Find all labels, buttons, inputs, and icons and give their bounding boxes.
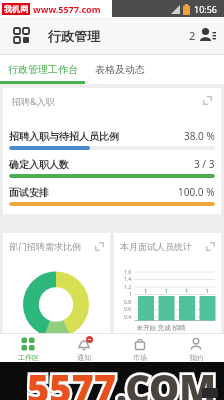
button[interactable]: 表格及动态: [85, 55, 155, 84]
button[interactable]: 行政管理工作台: [0, 55, 85, 84]
staticText: 工作区: [18, 353, 39, 362]
button[interactable]: 通知: [56, 334, 112, 362]
staticText: 5577.COM: [27, 362, 217, 400]
button[interactable]: [114, 253, 221, 333]
staticText: 部门招聘需求比例: [9, 241, 81, 252]
button[interactable]: 2: [189, 27, 216, 44]
staticText: 38.0 %: [184, 129, 215, 143]
staticText: 招聘&入职: [12, 95, 55, 107]
button[interactable]: [3, 253, 110, 333]
button[interactable]: 我的: [168, 334, 224, 362]
staticText: 市场: [133, 353, 147, 362]
staticText: 3 / 3: [194, 157, 215, 171]
staticText: 确定入职人数: [9, 158, 69, 171]
staticText: 表格及动态: [95, 63, 145, 76]
staticText: 100.0 %: [178, 185, 215, 199]
staticText: 5577.COM: [27, 362, 217, 400]
staticText: 行政管理: [48, 28, 100, 44]
button[interactable]: 招聘入职与待招人员比例: [9, 129, 215, 150]
button[interactable]: 确定入职人数: [9, 157, 215, 178]
staticText: 我的: [189, 353, 203, 362]
button[interactable]: 5577.COM: [0, 362, 224, 400]
button[interactable]: [14, 28, 29, 43]
staticText: www.5577.com: [33, 3, 101, 15]
staticText: 面试安排: [9, 186, 49, 199]
staticText: 行政管理工作台: [8, 63, 78, 76]
staticText: 招聘入职与待招人员比例: [9, 130, 119, 143]
staticText: 本月面试人员统计: [120, 241, 192, 252]
staticText: 我机网: [4, 4, 28, 14]
button[interactable]: 市场: [112, 334, 168, 362]
staticText: 通知: [77, 353, 91, 362]
staticText: 10:56: [194, 3, 218, 15]
staticText: 2: [189, 28, 196, 43]
button[interactable]: 工作区: [0, 334, 56, 362]
button[interactable]: 面试安排: [9, 185, 215, 206]
